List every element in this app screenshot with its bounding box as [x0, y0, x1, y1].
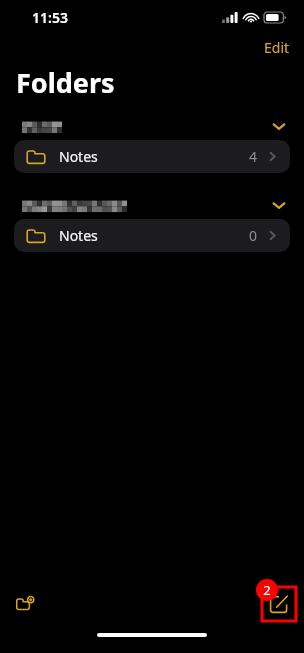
button[interactable]: New Note	[262, 587, 296, 621]
button[interactable]: Notes	[14, 219, 290, 252]
staticText: 11:53	[32, 8, 68, 27]
button[interactable]: New Folder	[8, 587, 42, 621]
button[interactable]	[0, 112, 304, 140]
button[interactable]: Notes	[14, 140, 290, 173]
staticText: 4	[249, 147, 258, 166]
staticText: Notes	[59, 226, 98, 245]
button[interactable]: Edit	[250, 36, 304, 59]
staticText: Edit	[264, 38, 290, 57]
staticText: Notes	[59, 147, 98, 166]
staticText: 0	[249, 226, 258, 245]
button[interactable]	[0, 191, 304, 219]
staticText: 2	[263, 581, 271, 599]
staticText: Folders	[16, 64, 115, 101]
